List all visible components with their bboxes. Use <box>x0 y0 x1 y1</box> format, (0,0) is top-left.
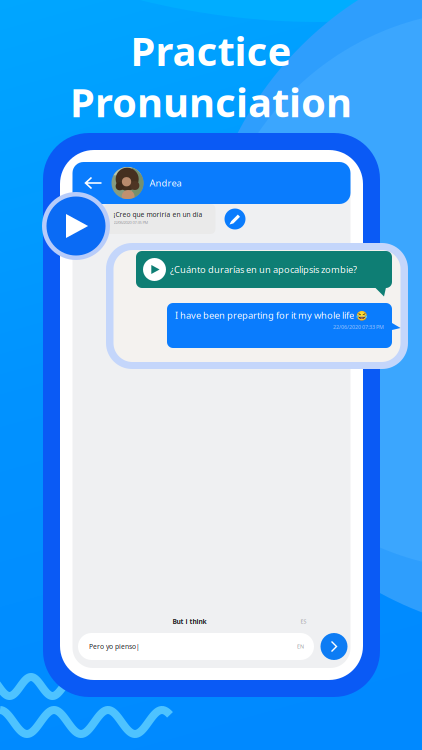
staticText: 22/06/2020 07:33 PM <box>333 323 384 330</box>
staticText: Pronunciation <box>70 75 352 128</box>
staticText: But i think <box>172 617 206 626</box>
button[interactable]: Back <box>78 166 108 200</box>
staticText: 22/06/2020 07:35 PM <box>113 220 148 225</box>
staticText: ¿Cuánto durarías en un apocalipsis zombi… <box>170 263 357 276</box>
button[interactable]: Send <box>320 633 347 660</box>
button[interactable]: Edit message <box>224 208 245 229</box>
staticText: Andrea <box>149 177 181 189</box>
staticText: I have been preparting for it my whole l… <box>175 309 368 321</box>
staticText: Practice <box>130 24 291 77</box>
staticText: EN <box>297 643 304 650</box>
button[interactable]: Play pronunciation <box>42 192 110 260</box>
staticText: ES <box>300 618 306 625</box>
staticText: Pero yo pienso| <box>89 642 140 651</box>
staticText: ¡Creo que moriría en un día <box>113 210 202 219</box>
